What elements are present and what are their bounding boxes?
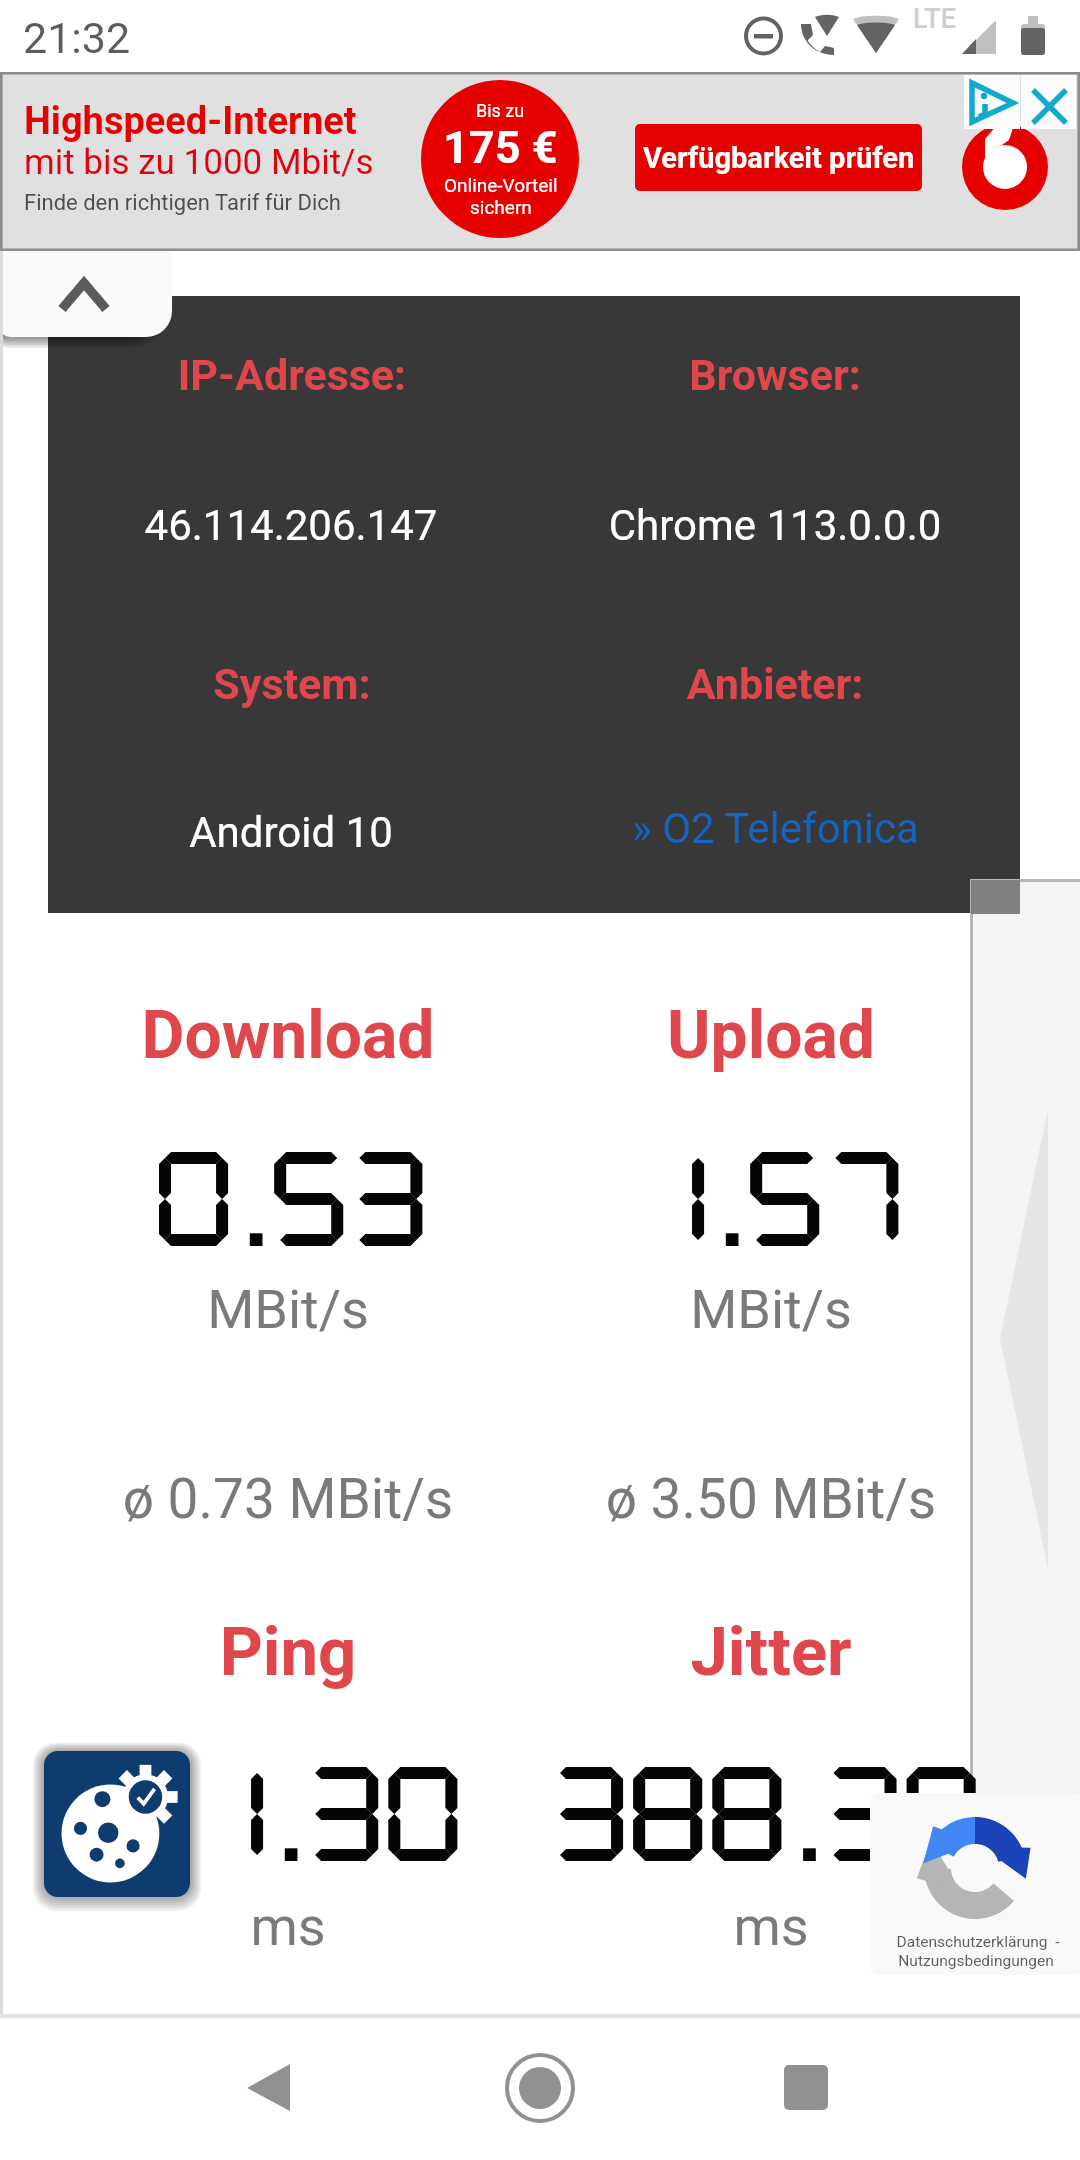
staticText: Ping xyxy=(0,1613,738,1692)
staticText: Android 10 xyxy=(0,808,741,857)
button[interactable]: Home xyxy=(505,2053,575,2123)
staticText: Jitter xyxy=(321,1613,1080,1692)
staticText: Datenschutzerklärung - xyxy=(872,1933,1080,1951)
staticText: Verfügbarkeit prüfen xyxy=(643,141,915,175)
button[interactable]: Recent apps xyxy=(782,2063,830,2111)
staticText: 175 € xyxy=(443,121,558,174)
button[interactable]: Verfügbarkeit prüfen xyxy=(635,124,922,191)
button[interactable]: Cookie settings xyxy=(44,1751,190,1897)
staticText: mit bis zu 1000 Mbit/s xyxy=(24,142,374,183)
staticText: IP-Adresse: xyxy=(0,350,742,400)
staticText: Download xyxy=(0,997,738,1074)
staticText: MBit/s xyxy=(0,1278,738,1341)
staticText: Online-Vorteil xyxy=(444,174,558,196)
staticText: Finde den richtigen Tarif für Dich xyxy=(24,190,341,216)
staticText: Upload xyxy=(321,997,1080,1074)
staticText: ø 0.73 MBit/s xyxy=(0,1467,738,1531)
staticText: 46.114.206.147 xyxy=(0,501,741,550)
staticText: sichern xyxy=(470,196,532,218)
staticText: MBit/s xyxy=(321,1278,1080,1341)
staticText: System: xyxy=(0,659,742,709)
button[interactable]: Back xyxy=(235,2054,301,2120)
staticText: Bis zu xyxy=(476,100,525,121)
button[interactable]: reCAPTCHA privacy and terms xyxy=(870,1793,1080,1975)
staticText: Browser: xyxy=(325,350,1080,400)
staticText: ø 3.50 MBit/s xyxy=(321,1467,1080,1531)
button[interactable]: Open side panel xyxy=(970,879,1080,1805)
staticText: ms xyxy=(321,1895,1080,1958)
staticText: Nutzungsbedingungen xyxy=(870,1952,1080,1970)
button[interactable]: Advertisement: Highspeed-Internet xyxy=(0,72,1080,251)
staticText: 21:32 xyxy=(23,13,131,63)
button[interactable]: Collapse details xyxy=(0,251,172,337)
button[interactable]: » O2 Telefonica xyxy=(534,797,1016,859)
staticText: Anbieter: xyxy=(325,659,1080,709)
staticText: » O2 Telefonica xyxy=(632,804,919,853)
staticText: ms xyxy=(0,1895,738,1958)
staticText: Chrome 113.0.0.0 xyxy=(325,501,1080,550)
button[interactable]: Close ad xyxy=(1021,75,1076,129)
staticText: LTE xyxy=(913,3,957,35)
button[interactable]: AdChoices xyxy=(964,75,1020,129)
staticText: Highspeed-Internet xyxy=(24,99,357,144)
